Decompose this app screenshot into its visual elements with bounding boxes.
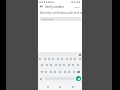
button[interactable]: Key [76, 63, 80, 67]
button[interactable]: Key [58, 70, 62, 74]
button[interactable]: Backspace [76, 70, 80, 74]
button[interactable]: Key [62, 63, 66, 67]
button[interactable]: Key [69, 57, 73, 61]
button[interactable]: Key [63, 70, 67, 74]
staticText: Verify number [45, 5, 65, 9]
button[interactable]: Key [72, 70, 76, 74]
button[interactable]: Key [49, 70, 53, 74]
button[interactable]: Key [56, 57, 60, 61]
button[interactable]: Key [40, 63, 44, 67]
button[interactable]: Key [44, 70, 48, 74]
button[interactable]: Key [67, 70, 71, 74]
button[interactable]: Key [54, 63, 58, 67]
button[interactable]: Send [76, 76, 81, 81]
button[interactable]: Key [53, 70, 57, 74]
button[interactable]: Key [47, 57, 51, 61]
button[interactable]: Recents [70, 84, 76, 90]
button[interactable]: Shift [40, 70, 44, 74]
button[interactable]: Key [38, 57, 42, 61]
staticText: Enter code [42, 18, 54, 21]
button[interactable]: Key [78, 57, 82, 61]
button[interactable]: Key [45, 63, 49, 67]
button[interactable]: Key [65, 57, 69, 61]
button[interactable]: Key [43, 57, 47, 61]
button[interactable]: Home [57, 84, 63, 90]
button[interactable]: Keyboard settings [78, 53, 81, 56]
button[interactable]: Symbols [39, 77, 43, 81]
button[interactable]: Key [49, 63, 53, 67]
button[interactable]: Key [51, 57, 55, 61]
button[interactable]: Back [39, 4, 44, 9]
button[interactable]: More options [73, 4, 81, 9]
button[interactable]: Key [71, 63, 75, 67]
staticText: HELP [74, 5, 80, 8]
button[interactable]: Key [67, 63, 71, 67]
button[interactable]: Enter code [40, 17, 81, 21]
button[interactable]: Back [45, 84, 51, 90]
button[interactable]: Key [73, 57, 77, 61]
staticText: Enter the verification code sent to your… [40, 11, 84, 15]
button[interactable]: Key [60, 57, 64, 61]
button[interactable]: Key [58, 63, 62, 67]
